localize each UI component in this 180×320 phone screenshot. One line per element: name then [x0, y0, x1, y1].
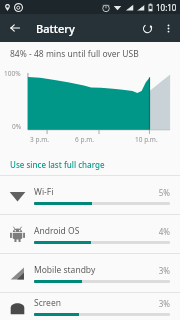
button[interactable]: Mobile standby: [0, 254, 180, 292]
staticText: 100%: [4, 69, 21, 78]
staticText: 10 p.m.: [135, 135, 158, 144]
staticText: 3 p.m.: [30, 135, 49, 144]
staticText: 10:10: [156, 2, 177, 13]
button[interactable]: Back: [4, 17, 26, 39]
staticText: 6 p.m.: [75, 135, 94, 144]
staticText: 3%: [158, 298, 170, 309]
button[interactable]: Use since last full charge: [0, 155, 180, 175]
staticText: 3%: [158, 265, 170, 276]
button[interactable]: More options: [158, 18, 178, 38]
staticText: 5%: [158, 187, 170, 198]
staticText: Mobile standby: [34, 264, 158, 276]
staticText: Wi-Fi: [34, 186, 158, 198]
staticText: Screen: [34, 297, 158, 309]
staticText: 0%: [12, 122, 22, 131]
button[interactable]: Refresh: [136, 17, 158, 39]
staticText: Android OS: [34, 225, 158, 237]
staticText: 4%: [158, 226, 170, 237]
staticText: Battery: [36, 21, 75, 36]
button[interactable]: Android OS: [0, 215, 180, 253]
button[interactable]: Screen: [0, 293, 180, 320]
staticText: Use since last full charge: [10, 159, 105, 170]
button[interactable]: Wi-Fi: [0, 176, 180, 214]
staticText: 84% - 48 mins until full over USB: [10, 48, 139, 60]
